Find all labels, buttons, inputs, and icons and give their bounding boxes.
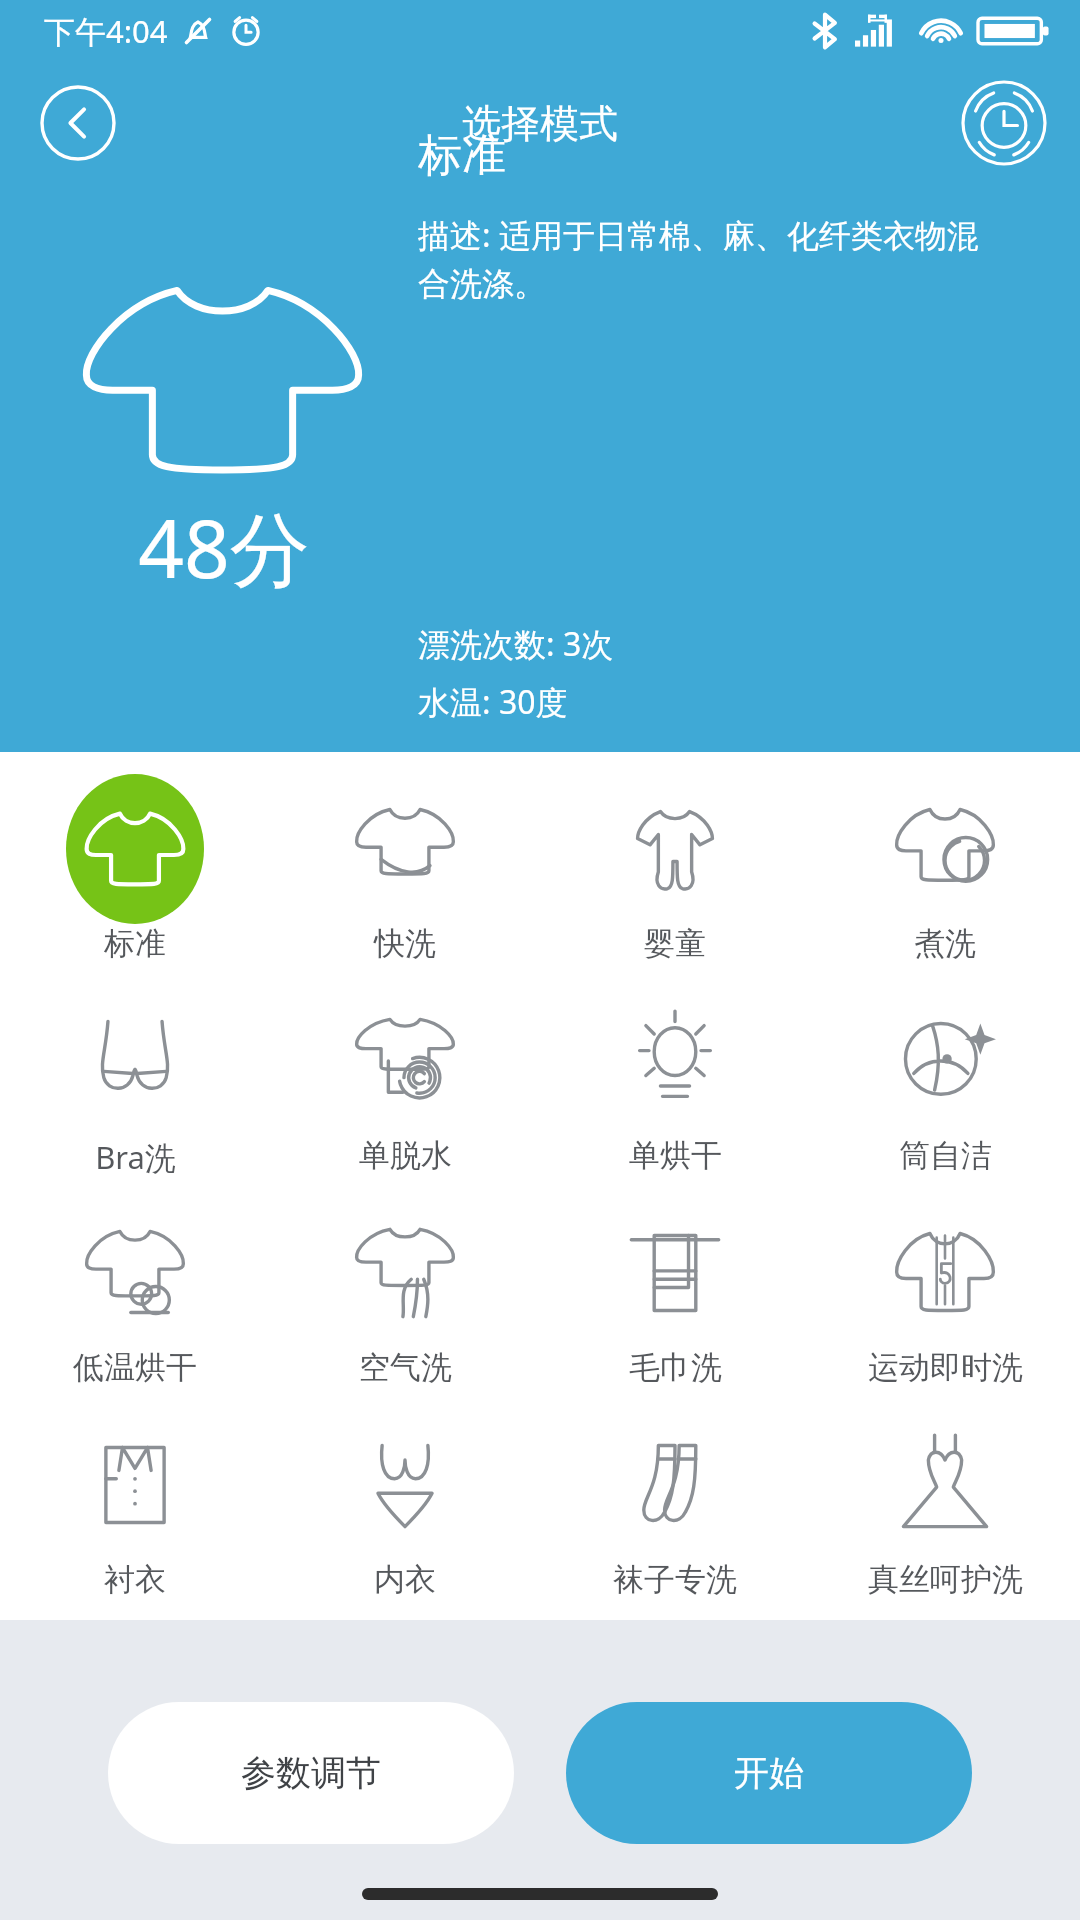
button[interactable]: 参数调节	[108, 1702, 514, 1844]
button[interactable]: 运动即时洗	[810, 1198, 1080, 1410]
button[interactable]: 低温烘干	[0, 1198, 270, 1410]
button[interactable]: 空气洗	[270, 1198, 540, 1410]
button[interactable]: 毛巾洗	[540, 1198, 810, 1410]
button[interactable]: 真丝呵护洗	[810, 1410, 1080, 1620]
staticText: Bra洗	[95, 1136, 176, 1178]
staticText: 48分	[138, 492, 310, 601]
staticText: 内衣	[374, 1560, 436, 1599]
staticText: 真丝呵护洗	[868, 1560, 1023, 1599]
staticText: 参数调节	[241, 1751, 381, 1795]
button[interactable]: 快洗	[270, 774, 540, 986]
staticText: 袜子专洗	[613, 1560, 737, 1599]
staticText: 婴童	[644, 924, 706, 963]
button[interactable]: 标准	[0, 774, 270, 986]
staticText: 描述: 适用于日常棉、麻、化纤类衣物混合洗涤。	[418, 213, 1003, 304]
button[interactable]: 返回	[40, 85, 116, 161]
staticText: 煮洗	[914, 924, 976, 963]
button[interactable]: Bra洗	[0, 986, 270, 1198]
staticText: 衬衣	[104, 1560, 166, 1599]
button[interactable]: 单烘干	[540, 986, 810, 1198]
button[interactable]: 衬衣	[0, 1410, 270, 1620]
staticText: 单烘干	[629, 1136, 722, 1175]
staticText: 低温烘干	[73, 1348, 197, 1387]
button[interactable]: 煮洗	[810, 774, 1080, 986]
staticText: 开始	[734, 1751, 804, 1795]
button[interactable]: 内衣	[270, 1410, 540, 1620]
staticText: 选择模式	[462, 99, 618, 148]
staticText: 标准	[104, 924, 166, 963]
staticText: 漂洗次数: 3次	[418, 622, 614, 666]
staticText: 下午4:04	[44, 10, 168, 52]
button[interactable]: 婴童	[540, 774, 810, 986]
staticText: 单脱水	[359, 1136, 452, 1175]
button[interactable]: 预约	[962, 81, 1046, 165]
button[interactable]: 筒自洁	[810, 986, 1080, 1198]
button[interactable]: 开始	[566, 1702, 972, 1844]
button[interactable]: 袜子专洗	[540, 1410, 810, 1620]
staticText: 快洗	[374, 924, 436, 963]
button[interactable]: 单脱水	[270, 986, 540, 1198]
staticText: 筒自洁	[899, 1136, 992, 1175]
staticText: 水温: 30度	[418, 680, 568, 724]
staticText: 运动即时洗	[868, 1348, 1023, 1387]
staticText: 毛巾洗	[629, 1348, 722, 1387]
staticText: 标准	[418, 128, 506, 183]
staticText: 空气洗	[359, 1348, 452, 1387]
